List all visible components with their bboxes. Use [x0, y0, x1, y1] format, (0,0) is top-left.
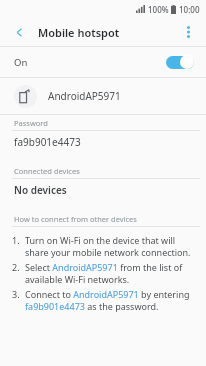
staticText: Connect to AndroidAP5971 by entering fa9… — [25, 288, 198, 313]
staticText: Select AndroidAP5971 from the list of av… — [25, 261, 198, 286]
button[interactable]: AndroidAP5971 — [0, 78, 206, 114]
staticText: 100% — [148, 4, 169, 15]
staticText: fa9b901e4473 — [14, 135, 81, 149]
staticText: Turn on Wi-Fi on the device that will sh… — [25, 234, 198, 259]
staticText: 3. — [12, 288, 20, 300]
staticText: AndroidAP5971 — [48, 89, 121, 103]
button[interactable]: On — [0, 47, 206, 77]
staticText: 1. — [12, 234, 20, 246]
staticText: Connected devices — [14, 166, 80, 176]
button[interactable]: Back — [10, 23, 28, 41]
staticText: 2. — [12, 261, 20, 273]
button[interactable]: fa9b901e4473 — [0, 131, 206, 153]
staticText: How to connect from other devices — [14, 214, 137, 224]
staticText: Mobile hotspot — [38, 25, 120, 40]
button[interactable]: More options — [178, 22, 198, 42]
staticText: Password — [14, 118, 48, 128]
button[interactable]: Mobile hotspot on — [166, 55, 194, 69]
staticText: 10:00 — [179, 4, 200, 15]
staticText: No devices — [14, 183, 67, 197]
staticText: On — [14, 56, 28, 69]
button[interactable]: No devices — [0, 179, 206, 201]
